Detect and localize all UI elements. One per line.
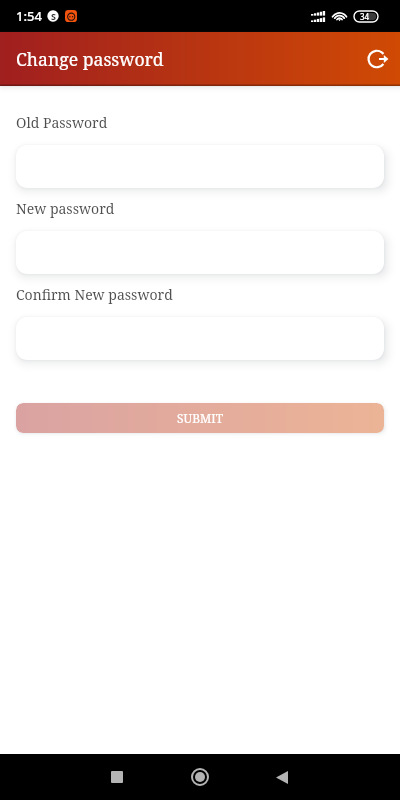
staticText: 34 xyxy=(360,11,370,22)
staticText: S xyxy=(51,10,56,22)
staticText: New password xyxy=(16,199,115,218)
button[interactable]: Back xyxy=(258,754,306,800)
staticText: SUBMIT xyxy=(177,410,223,426)
button[interactable]: Recents xyxy=(93,754,141,800)
button[interactable]: SUBMIT xyxy=(16,403,384,433)
staticText: 1:54 xyxy=(16,7,42,25)
staticText: Old Password xyxy=(16,113,108,132)
staticText: Confirm New password xyxy=(16,285,173,304)
staticText: Change password xyxy=(16,47,164,71)
button[interactable]: Home xyxy=(176,754,224,800)
button[interactable]: Logout xyxy=(358,38,400,80)
